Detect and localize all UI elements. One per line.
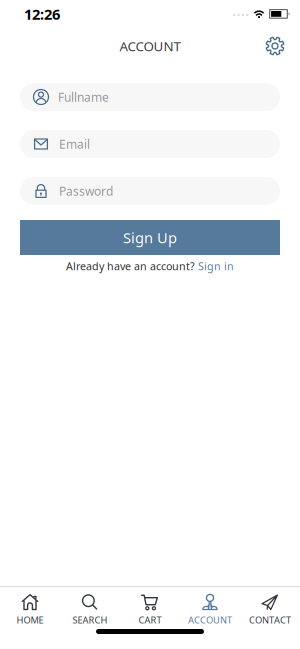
staticText: 12:26 (24, 4, 60, 24)
staticText: Fullname (58, 89, 109, 105)
button[interactable]: Sign in (198, 259, 234, 273)
staticText: HOME (16, 614, 43, 626)
staticText: CONTACT (249, 614, 291, 626)
staticText: Sign Up (123, 228, 177, 247)
button[interactable]: HOME (0, 593, 60, 626)
staticText: Email (59, 136, 90, 152)
button[interactable]: Sign Up (0, 220, 300, 255)
staticText: ACCOUNT (119, 37, 180, 55)
button[interactable]: CART (120, 593, 180, 626)
button[interactable]: ACCOUNT (180, 593, 240, 626)
button[interactable]: Fullname (0, 83, 300, 111)
staticText: Already have an account? (66, 259, 195, 273)
button[interactable]: Settings (265, 36, 285, 56)
button[interactable]: Password (0, 177, 300, 205)
staticText: ACCOUNT (188, 614, 232, 626)
button[interactable]: Email (0, 130, 300, 158)
button[interactable]: CONTACT (240, 593, 300, 626)
button[interactable]: SEARCH (60, 593, 120, 626)
staticText: Sign in (198, 259, 234, 273)
staticText: CART (138, 614, 161, 626)
staticText: SEARCH (72, 614, 107, 626)
staticText: Password (59, 183, 113, 199)
